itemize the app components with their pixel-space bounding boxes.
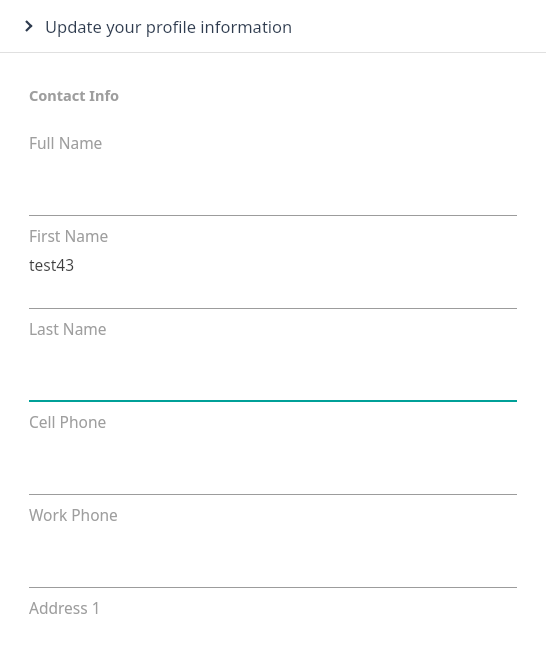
button[interactable]: Cell Phone [29, 402, 517, 495]
other: Expand section [22, 19, 36, 33]
staticText: Work Phone [29, 504, 118, 525]
staticText: test43 [29, 254, 75, 275]
button[interactable]: Work Phone [29, 495, 517, 588]
staticText: Last Name [29, 318, 107, 339]
button[interactable]: First Name [29, 216, 517, 309]
staticText: Full Name [29, 132, 103, 153]
button[interactable]: Expand section [0, 0, 546, 52]
staticText: Update your profile information [45, 15, 293, 37]
staticText: Contact Info [29, 85, 120, 105]
staticText: Cell Phone [29, 411, 107, 432]
button[interactable]: Full Name [29, 123, 517, 216]
staticText: Address 1 [29, 597, 101, 618]
staticText: First Name [29, 225, 109, 246]
button[interactable]: Address 1 [29, 588, 517, 651]
button[interactable]: Last Name [29, 309, 517, 402]
